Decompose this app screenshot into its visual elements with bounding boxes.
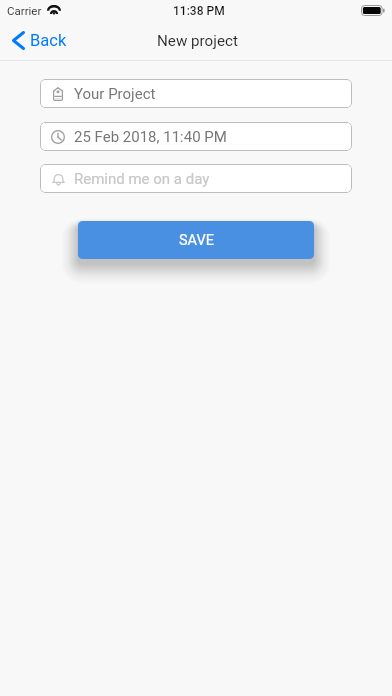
staticText: 25 Feb 2018, 11:40 PM — [74, 128, 227, 146]
staticText: SAVE — [179, 232, 214, 249]
other: Back — [12, 31, 25, 50]
button[interactable]: SAVE — [78, 221, 314, 259]
button[interactable]: Project name — [40, 79, 352, 108]
other: Battery full — [361, 5, 385, 16]
staticText: Carrier — [7, 4, 42, 17]
other: Wi-Fi — [47, 5, 61, 15]
staticText: Your Project — [74, 85, 156, 103]
button[interactable]: Reminder — [40, 164, 352, 193]
staticText: Back — [30, 31, 67, 50]
button[interactable]: Date and time — [40, 122, 352, 151]
button[interactable]: Back — [0, 25, 79, 56]
staticText: New project — [157, 32, 238, 50]
staticText: 11:38 PM — [173, 4, 225, 18]
staticText: Remind me on a day — [74, 170, 210, 188]
